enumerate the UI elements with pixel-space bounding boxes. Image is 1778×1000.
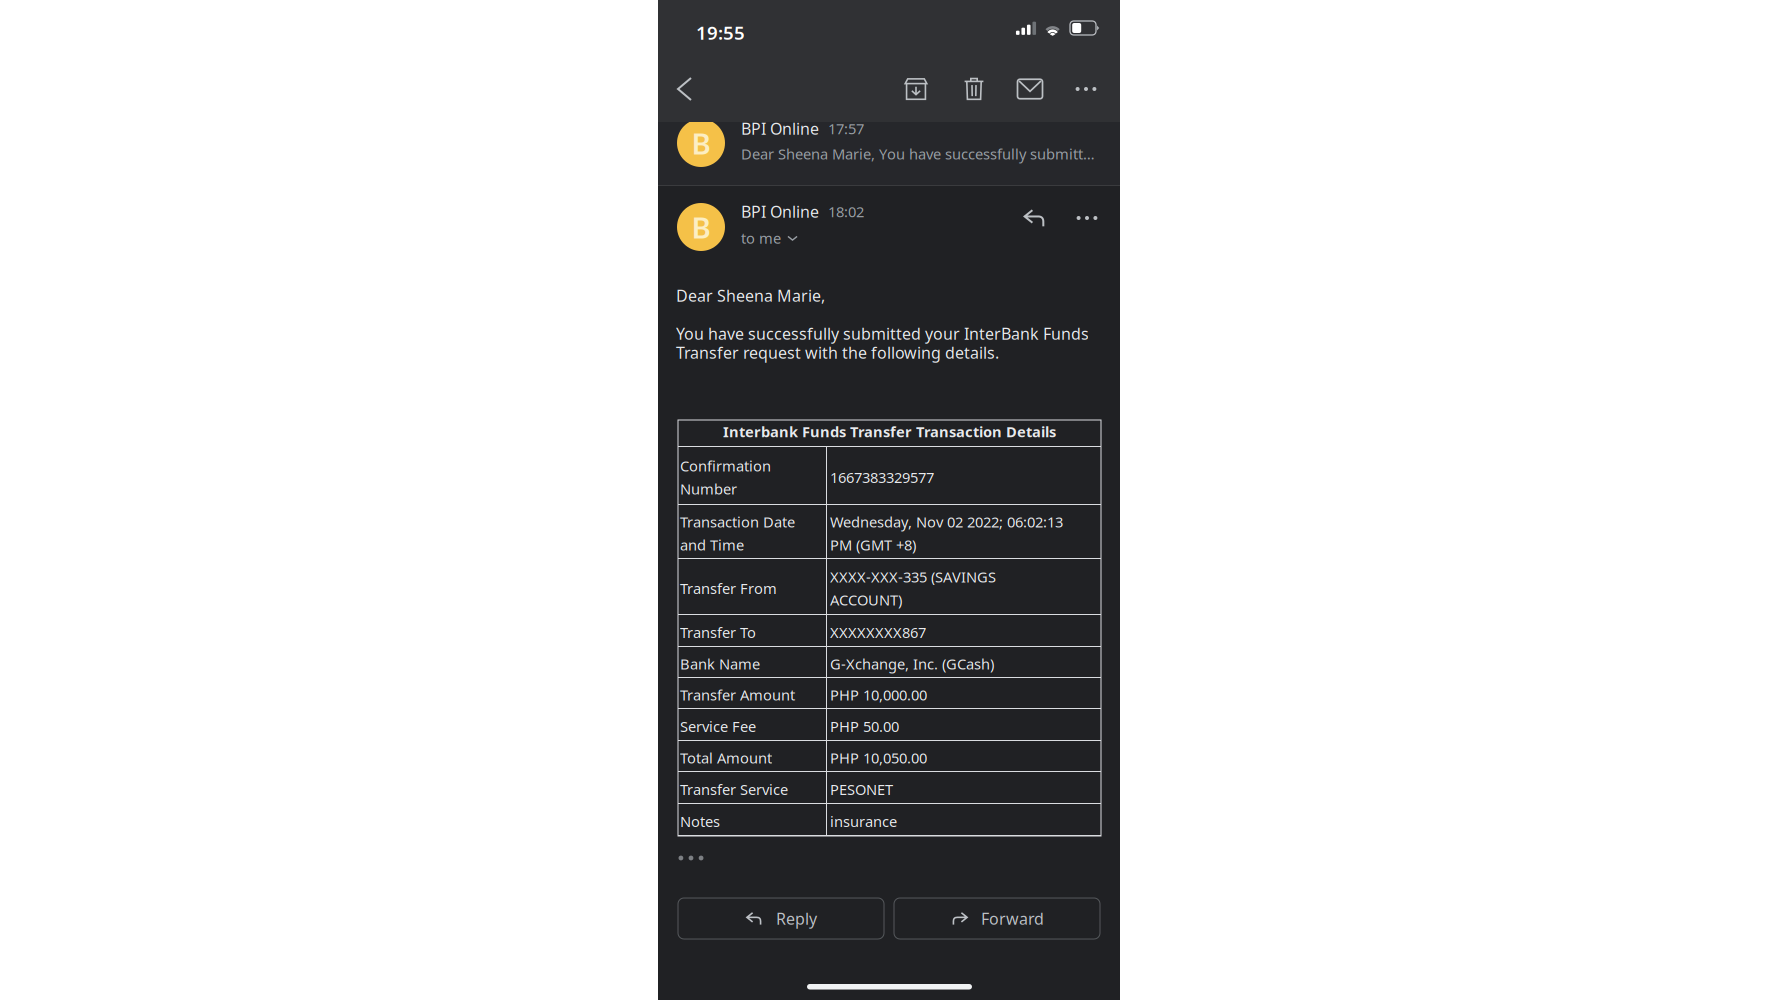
staticText: Number xyxy=(680,479,737,498)
button[interactable]: Reply xyxy=(1015,198,1055,238)
staticText: 19:55 xyxy=(696,20,745,45)
staticText: and Time xyxy=(680,535,744,554)
staticText: BPI Online xyxy=(741,201,819,222)
staticText: Reply xyxy=(776,908,817,929)
staticText: BPI Online xyxy=(741,118,819,139)
staticText: Confirmation xyxy=(680,456,771,475)
staticText: Transaction Date xyxy=(680,512,795,531)
staticText: PM (GMT +8) xyxy=(830,535,916,554)
staticText: ACCOUNT) xyxy=(830,590,902,609)
staticText: PESONET xyxy=(830,779,893,799)
staticText: Transfer To xyxy=(680,622,756,642)
staticText: insurance xyxy=(830,811,897,831)
button[interactable]: Mark as unread xyxy=(1008,67,1052,111)
staticText: Forward xyxy=(981,908,1044,929)
staticText: Dear Sheena Marie, You have successfully… xyxy=(741,144,1095,163)
button[interactable]: B xyxy=(658,109,1120,186)
button[interactable]: Archive xyxy=(894,67,938,111)
button[interactable]: Delete xyxy=(952,67,996,111)
staticText: Total Amount xyxy=(680,748,772,767)
staticText: Transfer Amount xyxy=(680,685,795,704)
staticText: G-Xchange, Inc. (GCash) xyxy=(830,654,994,673)
staticText: Bank Name xyxy=(680,654,760,673)
button[interactable]: More options xyxy=(1067,198,1107,238)
staticText: to me xyxy=(741,228,781,248)
staticText: Interbank Funds Transfer Transaction Det… xyxy=(723,422,1056,441)
button[interactable]: Show trimmed content xyxy=(677,848,705,868)
staticText: 1667383329577 xyxy=(830,467,934,487)
button[interactable]: More options xyxy=(1064,67,1108,111)
button[interactable]: to me xyxy=(741,228,799,248)
button[interactable]: Forward xyxy=(894,898,1100,939)
staticText: Service Fee xyxy=(680,716,756,736)
staticText: XXXXXXXX867 xyxy=(830,622,926,642)
staticText: Transfer Service xyxy=(680,779,788,799)
staticText: 17:57 xyxy=(828,119,864,138)
staticText: PHP 10,000.00 xyxy=(830,685,927,704)
staticText: You have successfully submitted your Int… xyxy=(676,323,1089,344)
staticText: XXXX-XXX-335 (SAVINGS xyxy=(830,567,996,586)
staticText: PHP 50.00 xyxy=(830,716,899,736)
staticText: Notes xyxy=(680,811,720,831)
staticText: B xyxy=(691,207,710,246)
staticText: Transfer From xyxy=(680,578,777,598)
staticText: 18:02 xyxy=(828,202,864,221)
staticText: PHP 10,050.00 xyxy=(830,748,927,767)
staticText: Wednesday, Nov 02 2022; 06:02:13 xyxy=(830,512,1063,531)
button[interactable]: Reply xyxy=(678,898,884,939)
staticText: Dear Sheena Marie, xyxy=(676,285,825,306)
staticText: B xyxy=(691,123,710,162)
button[interactable]: Back xyxy=(662,67,706,111)
staticText: Transfer request with the following deta… xyxy=(676,342,999,363)
